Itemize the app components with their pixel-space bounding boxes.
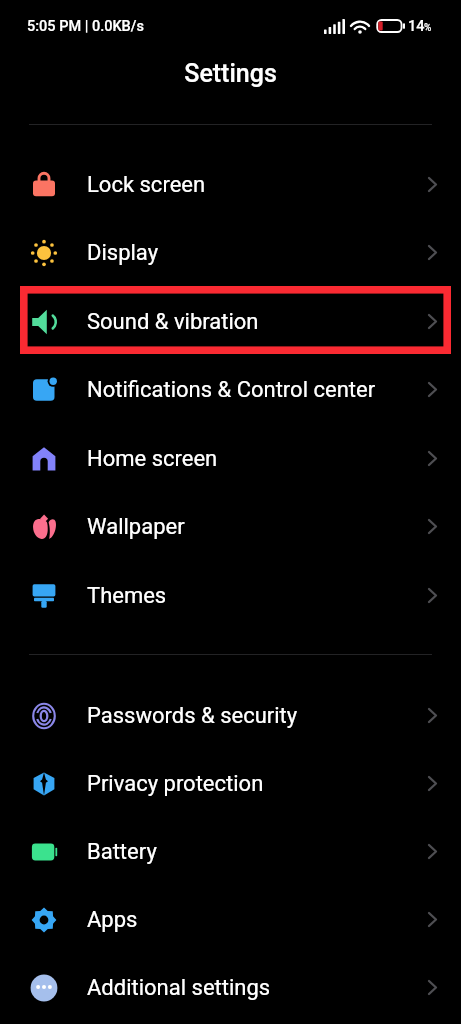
staticText: Themes: [87, 583, 167, 609]
other: Battery: [30, 838, 58, 866]
staticText: %: [424, 22, 432, 34]
button[interactable]: Themes: [0, 561, 461, 630]
staticText: Sound & vibration: [87, 309, 259, 335]
other: Passwords and security: [30, 702, 58, 730]
button[interactable]: Sound and vibration: [0, 287, 461, 356]
staticText: Notifications & Control center: [87, 377, 376, 403]
other: Notifications and Control center: [30, 376, 58, 404]
staticText: Privacy protection: [87, 771, 264, 797]
staticText: Wallpaper: [87, 514, 185, 540]
other: Display: [30, 239, 58, 267]
button[interactable]: Battery: [0, 817, 461, 886]
button[interactable]: Privacy protection: [0, 749, 461, 818]
staticText: Additional settings: [87, 975, 271, 1001]
button[interactable]: Home screen: [0, 424, 461, 493]
other: Sound and vibration: [30, 308, 58, 336]
staticText: Lock screen: [87, 172, 206, 198]
other: Home screen: [30, 445, 58, 473]
staticText: 5:05 PM | 0.0KB/s: [27, 18, 144, 35]
staticText: Battery: [87, 839, 157, 865]
button[interactable]: Display: [0, 218, 461, 287]
other: Additional settings: [30, 974, 58, 1002]
button[interactable]: Notifications and Control center: [0, 355, 461, 424]
staticText: Passwords & security: [87, 703, 298, 729]
staticText: Apps: [87, 907, 138, 933]
button[interactable]: Lock screen: [0, 150, 461, 219]
button[interactable]: Apps: [0, 885, 461, 954]
other: Lock screen: [30, 171, 58, 199]
button[interactable]: Additional settings: [0, 953, 461, 1022]
other: Wallpaper: [30, 513, 58, 541]
staticText: 14: [408, 18, 425, 35]
staticText: Settings: [184, 59, 277, 88]
other: Themes: [30, 582, 58, 610]
button[interactable]: Passwords and security: [0, 681, 461, 750]
staticText: Display: [87, 240, 159, 266]
staticText: Home screen: [87, 446, 218, 472]
other: Apps: [30, 906, 58, 934]
button[interactable]: Wallpaper: [0, 492, 461, 561]
other: Privacy protection: [30, 770, 58, 798]
